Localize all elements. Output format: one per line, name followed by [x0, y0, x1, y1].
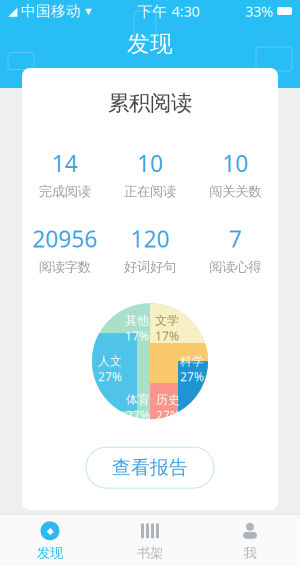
staticText: 120 [130, 224, 169, 254]
staticText: 查看报告 [112, 456, 188, 479]
staticText: 27% [180, 369, 204, 384]
staticText: 发现 [37, 545, 63, 561]
staticText: ◢ [8, 4, 17, 18]
staticText: 文学 [155, 313, 179, 328]
staticText: 正在阅读 [124, 183, 176, 200]
staticText: 27% [156, 407, 180, 423]
staticText: 其他 [125, 313, 149, 328]
staticText: 历史 [156, 392, 180, 407]
staticText: 17% [125, 328, 149, 344]
staticText: 中国移动 [21, 2, 81, 20]
button[interactable]: ◆ [0, 515, 100, 566]
staticText: 10 [222, 148, 248, 178]
staticText: 累积阅读 [108, 90, 192, 116]
staticText: 27% [126, 407, 150, 423]
staticText: 阅读字数 [39, 259, 91, 275]
staticText: 书架 [137, 545, 163, 561]
button[interactable]: 我 [200, 515, 300, 566]
staticText: 20956 [32, 224, 97, 254]
staticText: ◆ [46, 525, 53, 536]
button[interactable]: 查看报告 [86, 447, 214, 488]
staticText: 7 [229, 224, 242, 254]
staticText: 14 [52, 148, 78, 178]
staticText: 33% [245, 1, 273, 21]
staticText: 闯关关数 [209, 183, 261, 200]
staticText: 我 [243, 545, 256, 561]
staticText: 发现 [127, 30, 173, 58]
staticText: 17% [155, 328, 179, 344]
staticText: 科学 [180, 354, 204, 368]
staticText: 人文 [98, 354, 122, 368]
staticText: 阅读心得 [209, 259, 261, 275]
staticText: 27% [98, 369, 122, 384]
button[interactable]: 书架 [100, 515, 200, 566]
staticText: 完成阅读 [39, 183, 91, 200]
staticText: 体育 [126, 392, 150, 407]
staticText: 10 [137, 148, 163, 178]
staticText: 下午 4:30 [137, 1, 199, 21]
staticText: ▾ [85, 3, 92, 18]
staticText: 好词好句 [124, 259, 176, 275]
